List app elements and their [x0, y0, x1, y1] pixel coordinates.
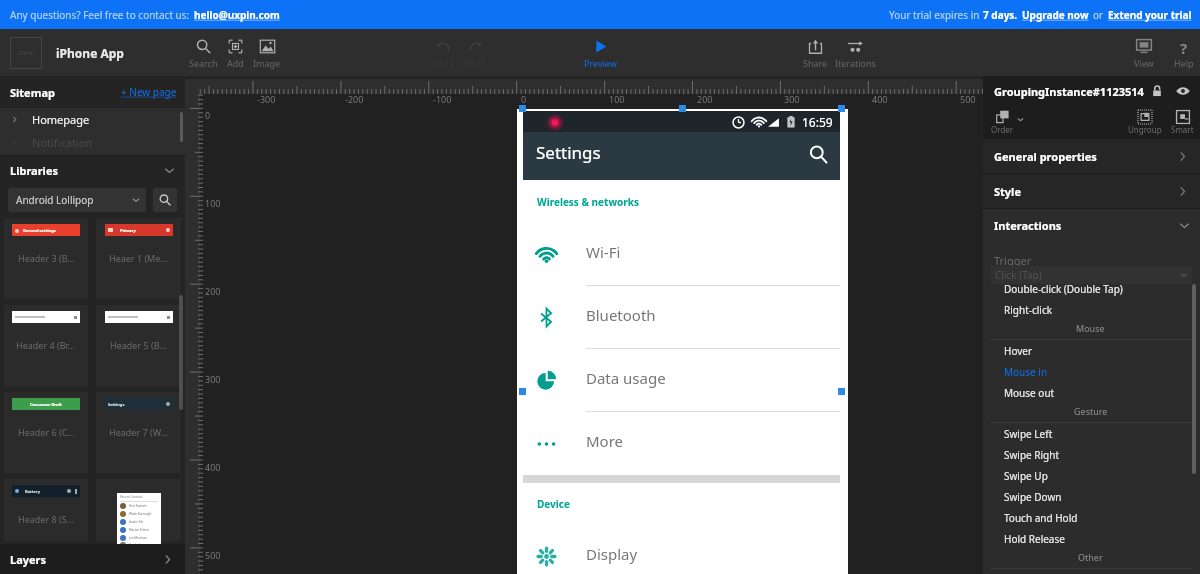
- button[interactable]: Display: [523, 525, 840, 574]
- button[interactable]: Right-click: [991, 299, 1200, 320]
- button[interactable]: Swipe Down: [991, 486, 1200, 507]
- staticText: Amela Jones: [129, 543, 147, 547]
- staticText: General settings: [23, 228, 56, 233]
- staticText: Mouse: [1076, 322, 1105, 334]
- staticText: Sitemap: [10, 85, 55, 100]
- staticText: Interactions: [994, 218, 1062, 233]
- staticText: Consumer Draft: [30, 402, 62, 407]
- staticText: Bluetooth: [586, 305, 656, 325]
- staticText: Notification: [32, 135, 93, 150]
- button[interactable]: ?: [1168, 35, 1200, 72]
- staticText: More: [586, 431, 624, 451]
- staticText: Mouse in: [1004, 365, 1048, 379]
- button[interactable]: Mouse out: [991, 382, 1200, 403]
- button[interactable]: Hold Release: [991, 528, 1200, 549]
- staticText: Swipe Down: [1004, 490, 1062, 504]
- staticText: Data usage: [586, 368, 666, 388]
- staticText: Austin Silt: [129, 520, 143, 524]
- button[interactable]: Ungroup: [1128, 110, 1162, 135]
- staticText: Smart: [1171, 124, 1194, 135]
- staticText: Right-click: [1004, 303, 1053, 317]
- button[interactable]: Header 5 (B...: [96, 305, 181, 386]
- button[interactable]: Touch and Hold: [991, 507, 1200, 528]
- button[interactable]: Search: [187, 36, 219, 72]
- button[interactable]: Click (Tap): [991, 266, 1192, 284]
- staticText: Touch and Hold: [1004, 511, 1078, 525]
- button[interactable]: Mouse in: [991, 361, 1200, 382]
- button[interactable]: Consumer Draft: [4, 392, 88, 473]
- button[interactable]: Order: [991, 110, 1024, 135]
- button[interactable]: Android Lollipop: [8, 188, 146, 212]
- staticText: 200: [205, 285, 221, 297]
- button[interactable]: Add: [219, 36, 251, 72]
- button[interactable]: Style: [983, 174, 1200, 208]
- staticText: Upgrade now: [1022, 8, 1089, 22]
- button[interactable]: Image: [251, 36, 283, 72]
- staticText: Wireless & networks: [537, 195, 639, 209]
- staticText: Marion Fulton: [129, 528, 149, 532]
- button[interactable]: Swipe Up: [991, 465, 1200, 486]
- staticText: 400: [872, 93, 888, 105]
- button[interactable]: Header 4 (Br...: [4, 305, 88, 386]
- staticText: Recent Contacts: [120, 495, 143, 499]
- staticText: -300: [257, 93, 276, 105]
- button[interactable]: + New page: [121, 85, 177, 99]
- button[interactable]: Preview: [578, 36, 623, 72]
- staticText: Click (Tap): [995, 268, 1042, 282]
- staticText: ?: [1180, 38, 1188, 54]
- button[interactable]: More: [523, 412, 840, 475]
- button[interactable]: Search: [802, 138, 834, 170]
- staticText: Header 3 (B...: [18, 252, 75, 264]
- button[interactable]: Double-click (Double Tap): [991, 278, 1200, 299]
- staticText: Heaer 1 (Me...: [109, 252, 168, 264]
- button[interactable]: Primary: [96, 218, 181, 299]
- button[interactable]: General properties: [983, 139, 1200, 173]
- button[interactable]: Homepage: [0, 108, 185, 131]
- staticText: Swipe Right: [1004, 448, 1060, 462]
- staticText: Iterations: [835, 57, 876, 69]
- button[interactable]: Lock: [1150, 84, 1164, 98]
- button[interactable]: Layers: [0, 544, 185, 574]
- button[interactable]: Libraries: [0, 156, 185, 184]
- staticText: 0: [521, 93, 527, 105]
- button[interactable]: Interactions: [983, 209, 1200, 241]
- button[interactable]: Bluetooth: [523, 286, 840, 349]
- button[interactable]: Search libraries: [153, 188, 177, 212]
- button[interactable]: Smart: [1171, 110, 1194, 135]
- staticText: hello@uxpin.com: [194, 8, 280, 22]
- button[interactable]: Hover: [991, 340, 1200, 361]
- button[interactable]: Battery: [4, 479, 88, 541]
- staticText: Gesture: [1074, 405, 1108, 417]
- button[interactable]: Swipe Right: [991, 444, 1200, 465]
- staticText: General properties: [994, 149, 1097, 164]
- staticText: Style: [994, 184, 1021, 199]
- button[interactable]: Swipe Left: [991, 423, 1200, 444]
- button[interactable]: General settings: [4, 218, 88, 299]
- button[interactable]: Settings: [96, 392, 181, 473]
- staticText: 300: [205, 373, 221, 385]
- button[interactable]: Recent Contacts: [96, 479, 181, 541]
- staticText: Libraries: [10, 163, 58, 178]
- staticText: Wi-Fi: [586, 242, 621, 262]
- staticText: 16:59: [802, 114, 833, 130]
- button[interactable]: View: [1128, 35, 1160, 72]
- button[interactable]: Wi-Fi: [523, 223, 840, 286]
- button[interactable]: Iterations: [834, 36, 876, 72]
- staticText: 100: [205, 197, 221, 209]
- button[interactable]: Toggle visibility: [1176, 84, 1190, 98]
- staticText: Header 7 (W...: [109, 426, 168, 438]
- staticText: 500: [960, 93, 976, 105]
- staticText: Mouse out: [1004, 386, 1055, 400]
- staticText: Hover: [1004, 344, 1033, 358]
- staticText: Android Lollipop: [16, 193, 94, 207]
- staticText: Order: [991, 124, 1014, 135]
- button[interactable]: Share: [799, 36, 831, 72]
- staticText: iPhone App: [56, 45, 124, 61]
- staticText: 100: [609, 93, 625, 105]
- button[interactable]: UXPin home: [10, 37, 42, 69]
- button[interactable]: Data usage: [523, 349, 840, 412]
- button[interactable]: Notification: [0, 131, 185, 154]
